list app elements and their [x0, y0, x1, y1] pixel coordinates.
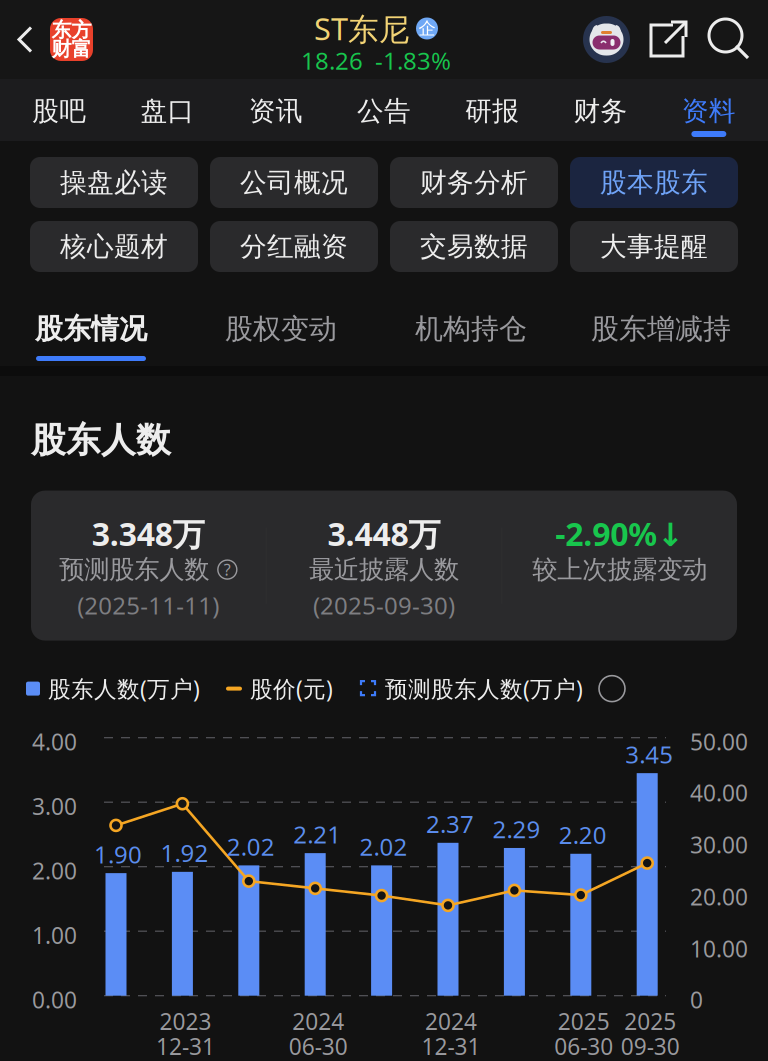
staticText: (2025-09-30)	[313, 589, 455, 621]
staticText: 20.00	[690, 882, 748, 912]
staticText: 预测股东人数	[59, 554, 209, 585]
staticText: 股权变动	[225, 312, 337, 346]
staticText: 2023	[159, 1006, 211, 1036]
button[interactable]: 财务分析	[390, 157, 558, 208]
button[interactable]: 股东情况	[0, 289, 186, 366]
staticText: 资讯	[249, 95, 303, 127]
staticText: 1.00	[32, 920, 77, 950]
staticText: 12-31	[156, 1031, 215, 1061]
staticText: 财务分析	[420, 166, 528, 199]
staticText: 2.00	[32, 856, 77, 886]
staticText: 4.00	[32, 727, 77, 757]
staticText: 股东增减持	[591, 312, 731, 346]
staticText: (2025-11-11)	[77, 589, 219, 621]
staticText: 2.02	[360, 830, 408, 862]
staticText: 机构持仓	[415, 312, 527, 346]
staticText: 09-30	[621, 1031, 680, 1061]
staticText: 3.348万	[92, 512, 205, 555]
button[interactable]: 东方财富	[50, 18, 93, 61]
staticText: 2.37	[426, 808, 474, 840]
button[interactable]: 盘口	[113, 79, 222, 141]
staticText: 2024	[292, 1006, 344, 1036]
staticText: 股东人数	[31, 419, 171, 462]
staticText: 股价(元)	[250, 674, 333, 704]
staticText: 财富	[51, 37, 91, 61]
staticText: 12-31	[421, 1031, 480, 1061]
staticText: -2.90%↓	[555, 512, 684, 555]
button[interactable]: 操盘必读	[30, 157, 198, 208]
staticText: 10.00	[690, 934, 748, 964]
button[interactable]: 股东增减持	[566, 289, 756, 366]
staticText: 交易数据	[420, 230, 528, 263]
staticText: ST东尼	[314, 8, 410, 49]
staticText: 0.00	[32, 985, 77, 1015]
staticText: 0	[690, 985, 703, 1015]
staticText: 2.21	[293, 818, 341, 850]
button[interactable]: 核心题材	[30, 221, 198, 272]
staticText: 资料	[682, 95, 736, 127]
button[interactable]: 资料	[655, 79, 763, 141]
staticText: 2.02	[227, 830, 275, 862]
staticText: 企	[418, 18, 435, 39]
staticText: 股吧	[32, 95, 86, 127]
staticText: 股本股东	[600, 166, 708, 199]
staticText: 40.00	[690, 778, 748, 808]
staticText: 公告	[357, 95, 411, 127]
button[interactable]: 公司概况	[210, 157, 378, 208]
staticText: 06-30	[289, 1031, 348, 1061]
staticText: 06-30	[554, 1031, 613, 1061]
staticText: 最近披露人数	[309, 554, 459, 585]
button[interactable]: 股吧	[5, 79, 113, 141]
staticText: 盘口	[140, 95, 194, 127]
button[interactable]: 股权变动	[186, 289, 376, 366]
staticText: ?	[224, 559, 231, 580]
staticText: 预测股东人数(万户)	[385, 674, 583, 704]
staticText: 财务	[574, 95, 628, 127]
staticText: 3.45	[625, 738, 673, 770]
staticText: 2.20	[559, 819, 607, 851]
button[interactable]: Search	[707, 17, 752, 62]
button[interactable]: 资讯	[222, 79, 330, 141]
staticText: 东方	[51, 18, 91, 42]
button[interactable]: 研报	[438, 79, 546, 141]
staticText: 股东人数(万户)	[48, 674, 200, 704]
staticText: 股东情况	[35, 312, 147, 346]
staticText: 2025	[558, 1006, 610, 1036]
staticText: 2.29	[492, 813, 540, 845]
staticText: 3.448万	[327, 512, 440, 555]
staticText: 2024	[425, 1006, 477, 1036]
button[interactable]: 公告	[330, 79, 438, 141]
button[interactable]: 财务	[546, 79, 655, 141]
button[interactable]: AI 助手	[583, 16, 630, 63]
staticText: 2025	[624, 1006, 676, 1036]
staticText: 1.92	[160, 837, 208, 869]
button[interactable]: Back	[0, 9, 50, 69]
staticText: 18.26 -1.83%	[301, 45, 451, 76]
staticText: 核心题材	[60, 230, 168, 263]
staticText: 50.00	[690, 727, 748, 757]
staticText: 较上次披露变动	[532, 554, 707, 585]
staticText: 1.90	[94, 838, 142, 870]
staticText: 3.00	[32, 791, 77, 821]
button[interactable]: 交易数据	[390, 221, 558, 272]
staticText: 大事提醒	[600, 230, 708, 263]
staticText: 研报	[465, 95, 519, 127]
staticText: 分红融资	[240, 230, 348, 263]
staticText: 公司概况	[240, 166, 348, 199]
button[interactable]: 大事提醒	[570, 221, 738, 272]
button[interactable]: 股本股东	[570, 157, 738, 208]
button[interactable]: 分红融资	[210, 221, 378, 272]
button[interactable]: 机构持仓	[376, 289, 566, 366]
staticText: 30.00	[690, 830, 748, 860]
staticText: 操盘必读	[60, 166, 168, 199]
button[interactable]: Share	[646, 17, 691, 62]
